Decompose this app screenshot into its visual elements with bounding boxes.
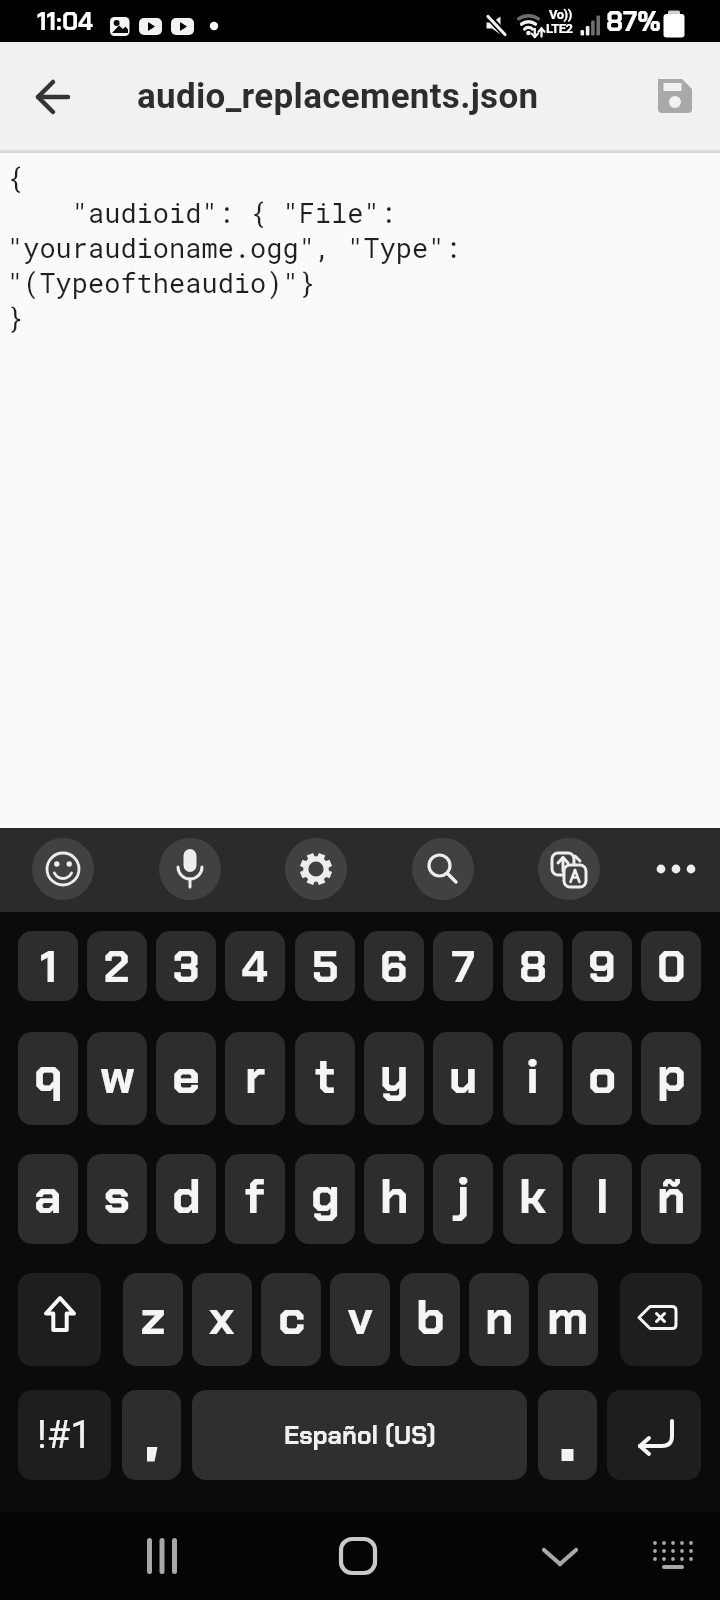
staticText: ñ bbox=[657, 1165, 686, 1227]
staticText: { "audioid": { "File": "youraudioname.og… bbox=[7, 160, 461, 335]
staticText: 87% bbox=[606, 4, 661, 39]
button[interactable]: l bbox=[572, 1154, 632, 1244]
button[interactable]: t bbox=[295, 1032, 355, 1125]
button[interactable] bbox=[32, 838, 94, 900]
button[interactable]: y bbox=[364, 1032, 424, 1125]
staticText: 6 bbox=[380, 938, 408, 995]
button[interactable] bbox=[620, 1273, 702, 1366]
button[interactable]: m bbox=[538, 1273, 598, 1366]
button[interactable] bbox=[122, 1390, 181, 1480]
button[interactable]: 6 bbox=[364, 931, 424, 1001]
button[interactable] bbox=[285, 838, 347, 900]
staticText: 11:04 bbox=[37, 5, 93, 37]
button[interactable]: 9 bbox=[572, 931, 632, 1001]
staticText: 4 bbox=[242, 938, 268, 995]
staticText: e bbox=[172, 1045, 200, 1107]
staticText: k bbox=[519, 1165, 547, 1227]
staticText: 5 bbox=[312, 938, 339, 995]
button[interactable]: 8 bbox=[503, 931, 563, 1001]
button[interactable]: 2 bbox=[87, 931, 147, 1001]
button[interactable] bbox=[645, 853, 707, 885]
button[interactable]: 3 bbox=[156, 931, 216, 1001]
button[interactable] bbox=[326, 1524, 390, 1588]
staticText: r bbox=[245, 1045, 265, 1107]
button[interactable]: 5 bbox=[295, 931, 355, 1001]
staticText: m bbox=[547, 1286, 589, 1348]
button[interactable]: v bbox=[330, 1273, 390, 1366]
button[interactable] bbox=[645, 1526, 701, 1582]
staticText: t bbox=[315, 1045, 335, 1107]
button[interactable] bbox=[412, 838, 474, 900]
staticText: u bbox=[449, 1045, 478, 1107]
button[interactable] bbox=[528, 1524, 592, 1588]
staticText: i bbox=[526, 1045, 540, 1107]
staticText: 0 bbox=[657, 938, 686, 995]
button[interactable]: a bbox=[18, 1154, 78, 1244]
button[interactable]: z bbox=[123, 1273, 183, 1366]
staticText: Vo)) bbox=[549, 7, 572, 22]
staticText: v bbox=[348, 1286, 373, 1348]
button[interactable]: q bbox=[18, 1032, 78, 1125]
staticText: h bbox=[380, 1165, 409, 1227]
button[interactable] bbox=[538, 1390, 597, 1480]
staticText: p bbox=[657, 1043, 686, 1105]
staticText: 3 bbox=[173, 938, 200, 995]
staticText: z bbox=[141, 1286, 165, 1348]
button[interactable]: k bbox=[503, 1154, 563, 1244]
staticText: 1 bbox=[40, 938, 57, 995]
button[interactable]: 1 bbox=[18, 931, 78, 1001]
staticText: a bbox=[34, 1165, 62, 1227]
staticText: !#1 bbox=[37, 1413, 92, 1458]
staticText: q bbox=[34, 1043, 63, 1105]
staticText: 2 bbox=[104, 938, 130, 995]
button[interactable]: u bbox=[433, 1032, 493, 1125]
staticText: d bbox=[172, 1165, 201, 1227]
button[interactable] bbox=[646, 61, 704, 119]
staticText: j bbox=[456, 1163, 470, 1225]
button[interactable] bbox=[22, 65, 86, 129]
staticText: w bbox=[100, 1045, 135, 1107]
staticText: l bbox=[596, 1165, 609, 1227]
button[interactable]: d bbox=[156, 1154, 216, 1244]
staticText: 7 bbox=[452, 938, 475, 995]
button[interactable]: h bbox=[364, 1154, 424, 1244]
button[interactable]: x bbox=[192, 1273, 252, 1366]
button[interactable]: o bbox=[572, 1032, 632, 1125]
button[interactable]: b bbox=[400, 1273, 460, 1366]
button[interactable]: g bbox=[295, 1154, 355, 1244]
staticText: b bbox=[416, 1286, 445, 1348]
staticText: Español (US) bbox=[284, 1419, 436, 1451]
staticText: f bbox=[245, 1165, 265, 1227]
button[interactable]: ñ bbox=[641, 1154, 701, 1244]
button[interactable]: j bbox=[433, 1154, 493, 1244]
button[interactable] bbox=[18, 1273, 101, 1366]
button[interactable]: 7 bbox=[433, 931, 493, 1001]
button[interactable] bbox=[133, 1524, 197, 1588]
button[interactable]: 0 bbox=[641, 931, 701, 1001]
button[interactable]: Español (US) bbox=[192, 1390, 527, 1480]
button[interactable]: f bbox=[225, 1154, 285, 1244]
button[interactable] bbox=[159, 838, 221, 900]
button[interactable]: w bbox=[87, 1032, 147, 1125]
button[interactable]: n bbox=[469, 1273, 529, 1366]
button[interactable] bbox=[538, 838, 600, 900]
button[interactable]: p bbox=[641, 1032, 701, 1125]
staticText: o bbox=[588, 1045, 617, 1107]
button[interactable]: i bbox=[503, 1032, 563, 1125]
staticText: x bbox=[209, 1286, 235, 1348]
button[interactable]: !#1 bbox=[18, 1390, 111, 1480]
staticText: y bbox=[380, 1043, 409, 1105]
staticText: 9 bbox=[588, 938, 616, 995]
staticText: s bbox=[104, 1165, 130, 1227]
staticText: n bbox=[485, 1286, 514, 1348]
staticText: LTE2 bbox=[546, 21, 573, 36]
button[interactable]: r bbox=[225, 1032, 285, 1125]
button[interactable] bbox=[607, 1390, 701, 1480]
button[interactable]: e bbox=[156, 1032, 216, 1125]
button[interactable]: c bbox=[261, 1273, 321, 1366]
staticText: 8 bbox=[519, 938, 548, 995]
button[interactable]: s bbox=[87, 1154, 147, 1244]
button[interactable]: 4 bbox=[225, 931, 285, 1001]
staticText: audio_replacements.json bbox=[137, 76, 539, 117]
staticText: g bbox=[311, 1163, 340, 1225]
